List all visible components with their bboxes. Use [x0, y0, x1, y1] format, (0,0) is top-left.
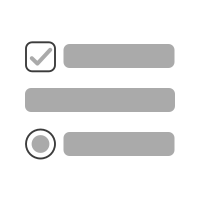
button[interactable]: Option [25, 88, 175, 112]
button[interactable]: Checkbox option [25, 40, 175, 72]
button[interactable]: Radio option [25, 128, 175, 160]
